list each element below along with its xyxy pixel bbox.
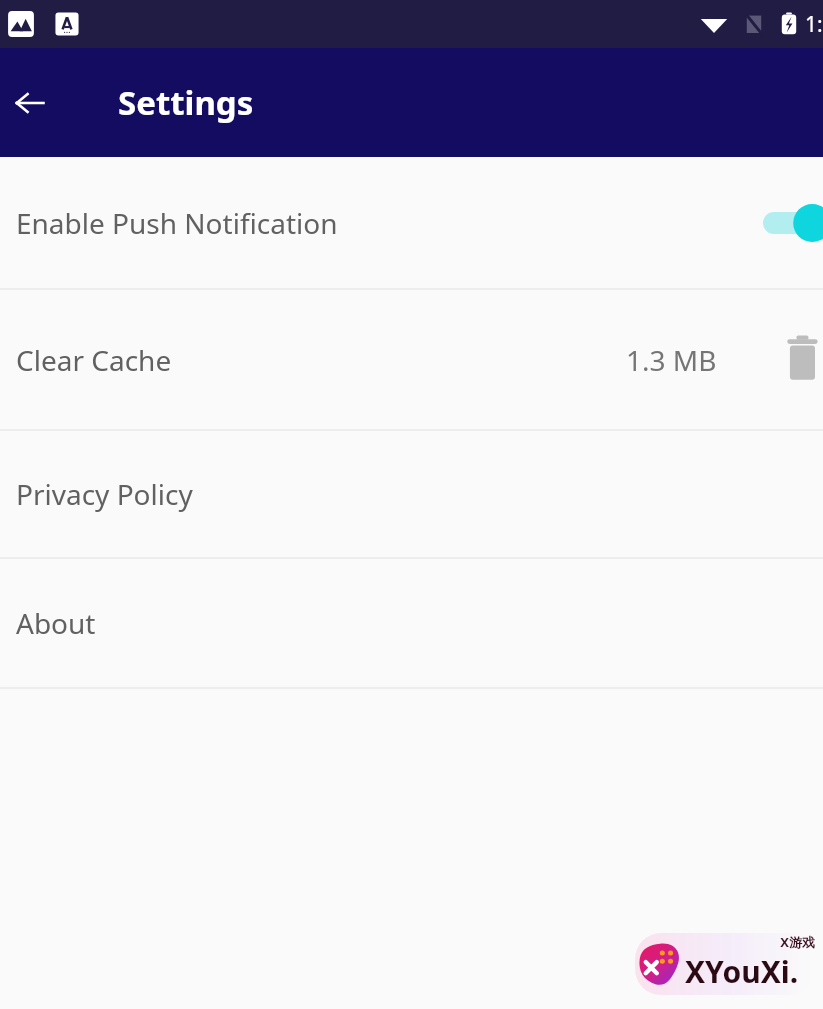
staticText: 1: <box>805 10 823 39</box>
other: Clear cache <box>785 330 823 390</box>
staticText: XYouXi.net <box>685 951 815 995</box>
button[interactable]: Privacy Policy <box>0 431 823 557</box>
staticText: Clear Cache <box>16 341 172 379</box>
button[interactable]: Clear Cache <box>0 290 823 429</box>
button[interactable]: Enable Push Notification <box>0 157 823 288</box>
staticText: Enable Push Notification <box>16 204 338 242</box>
staticText: Privacy Policy <box>16 475 193 513</box>
staticText: About <box>16 604 96 642</box>
other: Enable Push Notification toggle <box>763 198 823 248</box>
button[interactable]: About <box>0 559 823 687</box>
staticText: Settings <box>118 80 254 125</box>
staticText: X游戏 <box>780 933 815 951</box>
staticText: 1.3 MB <box>626 341 717 379</box>
button[interactable]: Back <box>6 79 54 127</box>
